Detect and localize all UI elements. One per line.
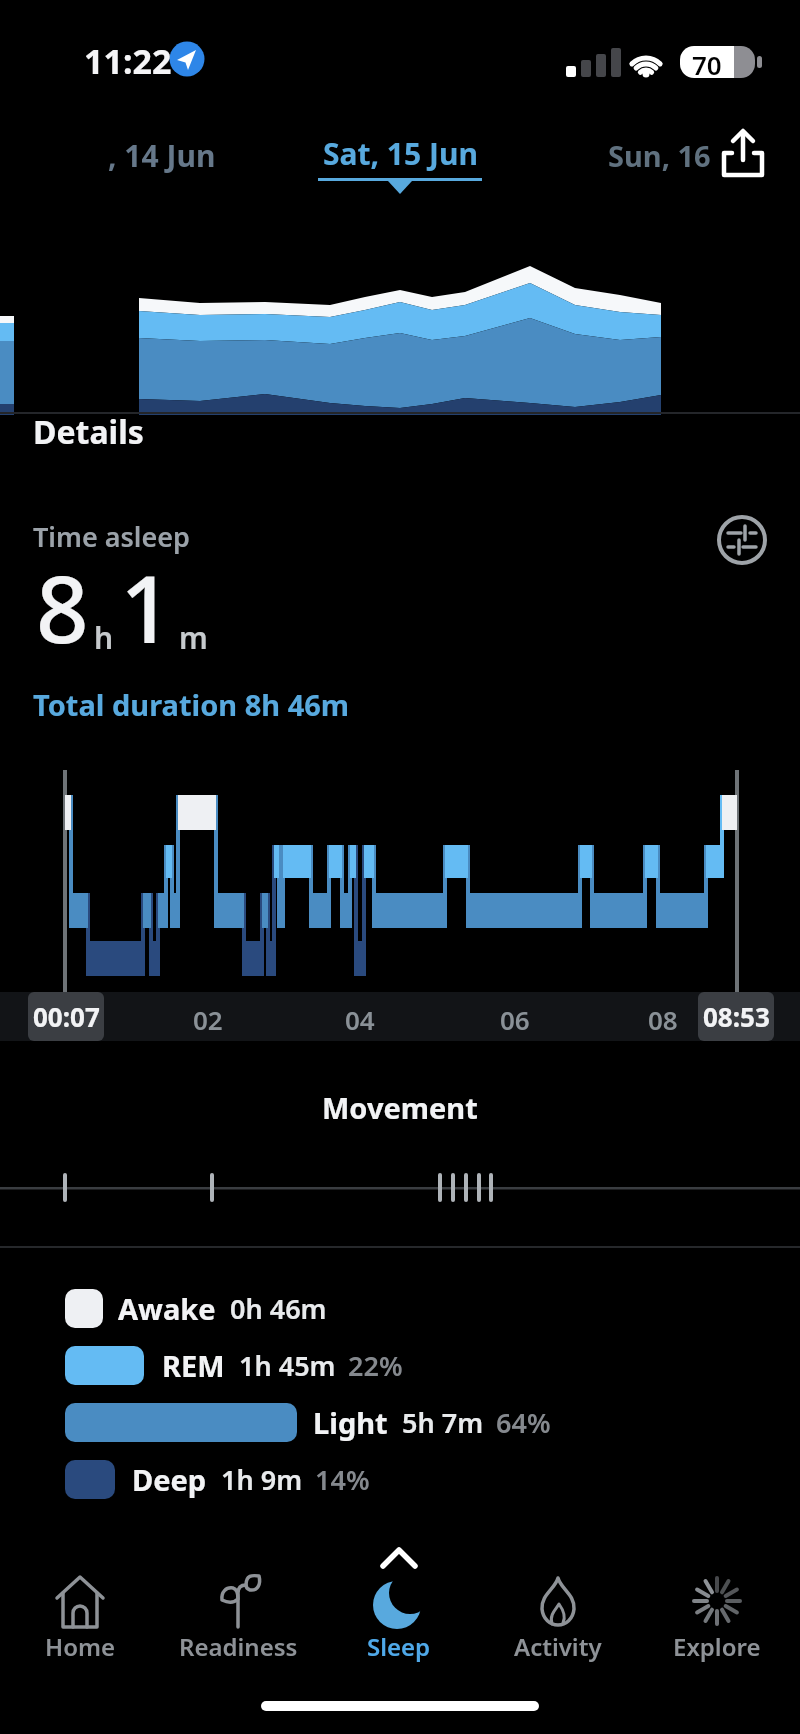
button[interactable]: Sleep bbox=[320, 1568, 478, 1668]
button[interactable]: Deep bbox=[65, 1460, 370, 1499]
button[interactable]: Sat, 15 Jun bbox=[318, 130, 482, 176]
staticText: 70 bbox=[692, 47, 722, 77]
staticText: Details bbox=[33, 410, 144, 454]
button[interactable]: REM bbox=[65, 1346, 403, 1385]
staticText: Movement bbox=[322, 1088, 478, 1127]
button[interactable]: Home bbox=[1, 1568, 159, 1668]
button[interactable]: Sun, 16 bbox=[600, 130, 710, 176]
staticText: 8 bbox=[36, 545, 89, 670]
staticText: 00:07 bbox=[33, 999, 100, 1034]
staticText: 5h 7m bbox=[402, 1404, 484, 1441]
staticText: 08:53 bbox=[703, 999, 770, 1034]
staticText: Sun, 16 bbox=[608, 136, 711, 175]
staticText: Home bbox=[45, 1630, 116, 1663]
staticText: Activity bbox=[514, 1630, 602, 1663]
button[interactable]: Awake bbox=[65, 1289, 327, 1328]
staticText: 0h 46m bbox=[230, 1290, 327, 1327]
button[interactable] bbox=[715, 122, 771, 184]
staticText: Sleep bbox=[367, 1630, 431, 1663]
staticText: 02 bbox=[193, 1002, 223, 1037]
staticText: 22% bbox=[348, 1347, 403, 1384]
staticText: m bbox=[179, 617, 208, 658]
staticText: 14% bbox=[315, 1461, 370, 1498]
staticText: 04 bbox=[345, 1002, 375, 1037]
staticText: Deep bbox=[132, 1460, 207, 1499]
staticText: Sat, 15 Jun bbox=[323, 133, 478, 174]
staticText: 11:22 bbox=[84, 38, 172, 84]
button[interactable]: Readiness bbox=[159, 1568, 317, 1668]
button[interactable] bbox=[714, 512, 770, 568]
button[interactable]: , 14 Jun bbox=[95, 130, 235, 176]
button[interactable]: Activity bbox=[479, 1568, 637, 1668]
staticText: Time asleep bbox=[33, 518, 190, 555]
staticText: 1 bbox=[120, 545, 173, 670]
staticText: 06 bbox=[500, 1002, 530, 1037]
staticText: Light bbox=[313, 1403, 388, 1442]
staticText: Readiness bbox=[179, 1630, 298, 1663]
button[interactable]: Light bbox=[65, 1403, 551, 1442]
staticText: 08 bbox=[648, 1002, 678, 1037]
staticText: , 14 Jun bbox=[108, 135, 216, 176]
staticText: Total duration 8h 46m bbox=[33, 685, 350, 724]
staticText: Explore bbox=[673, 1630, 761, 1663]
staticText: Awake bbox=[118, 1289, 216, 1328]
staticText: 64% bbox=[496, 1404, 551, 1441]
staticText: 1h 45m bbox=[239, 1347, 336, 1384]
button[interactable]: Explore bbox=[638, 1568, 796, 1668]
staticText: 1h 9m bbox=[221, 1461, 303, 1498]
staticText: REM bbox=[162, 1346, 225, 1385]
staticText: h bbox=[94, 617, 114, 658]
